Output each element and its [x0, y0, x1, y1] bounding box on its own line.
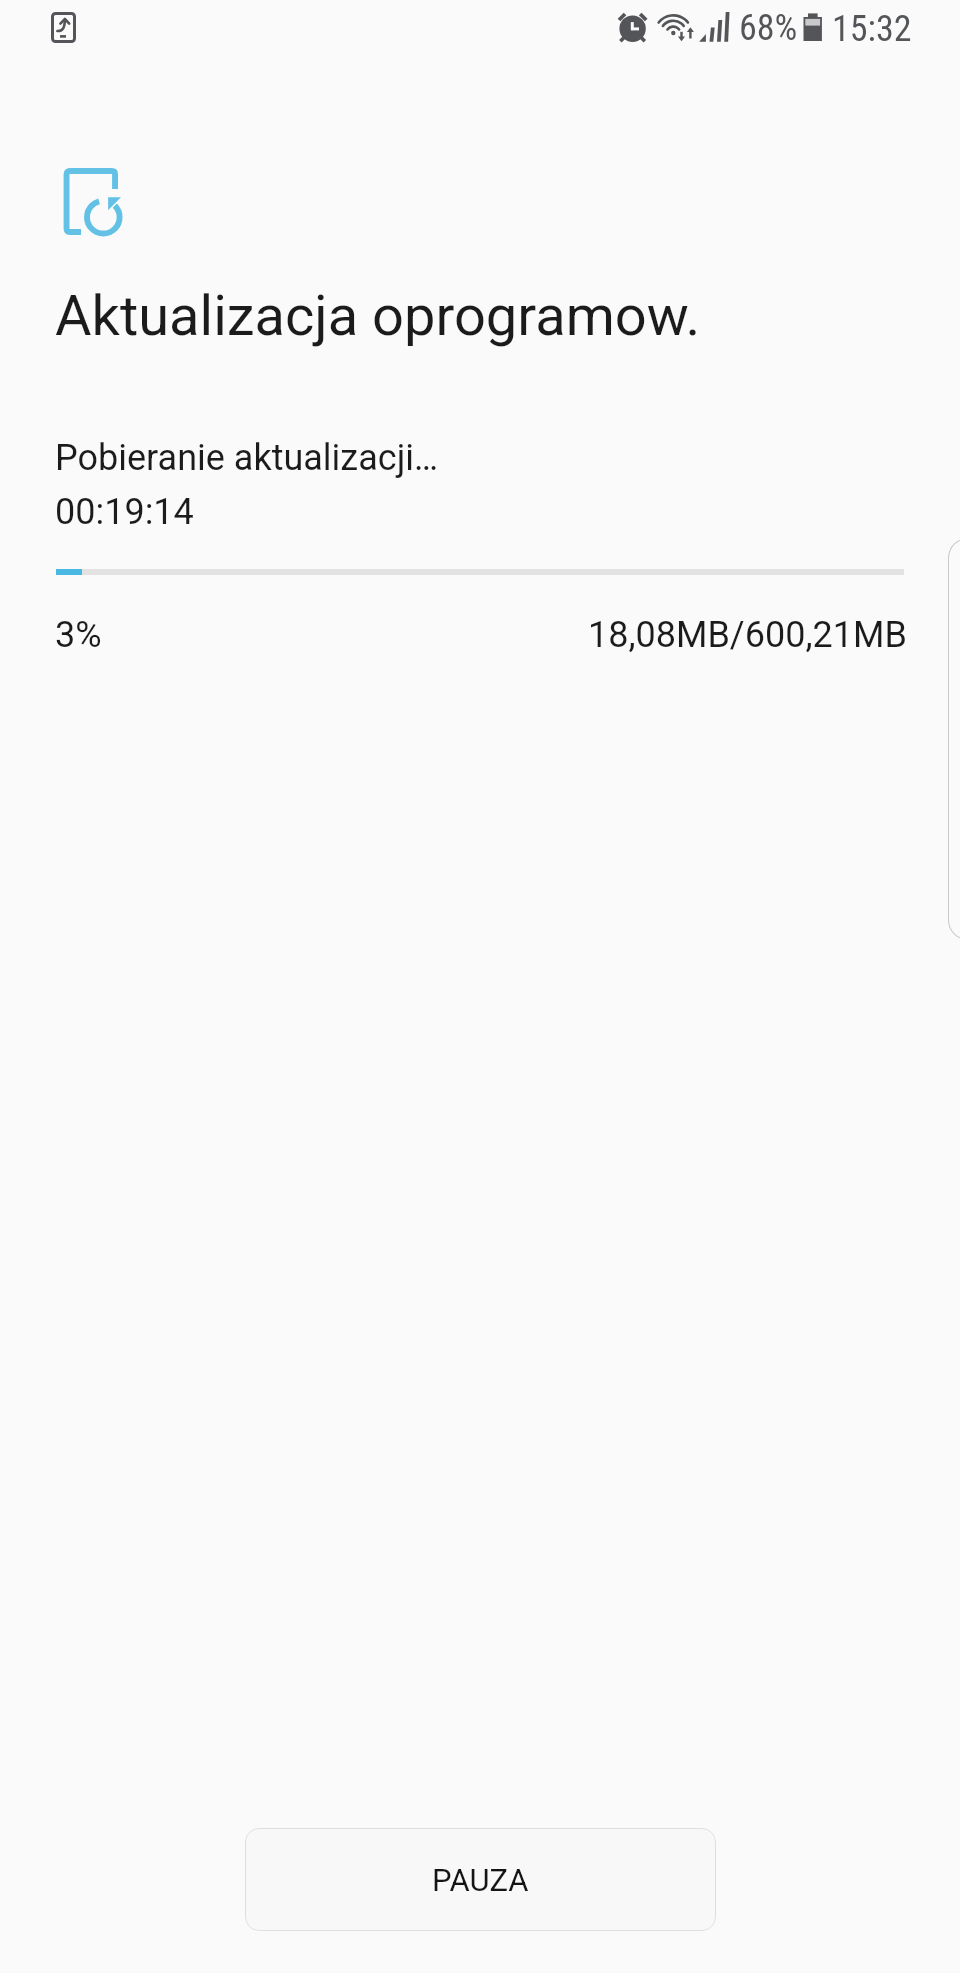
other: Mobile signal full — [699, 11, 730, 43]
other: Wi-Fi connected — [655, 8, 697, 44]
button[interactable]: PAUZA — [245, 1828, 716, 1931]
other: Download progress 3 percent — [56, 569, 904, 575]
staticText: Aktualizacja oprogramow. — [55, 283, 701, 349]
staticText: 68% — [739, 7, 798, 49]
staticText: 15:32 — [832, 8, 912, 50]
other: Battery 68 percent — [803, 13, 824, 43]
other: Alarm set — [617, 11, 649, 43]
staticText: Pobieranie aktualizacji… — [55, 437, 439, 479]
staticText: PAUZA — [432, 1862, 529, 1898]
staticText: 3% — [55, 614, 102, 656]
staticText: 00:19:14 — [55, 491, 194, 533]
staticText: 18,08MB/600,21MB — [588, 614, 907, 656]
other: Software update — [51, 12, 76, 43]
